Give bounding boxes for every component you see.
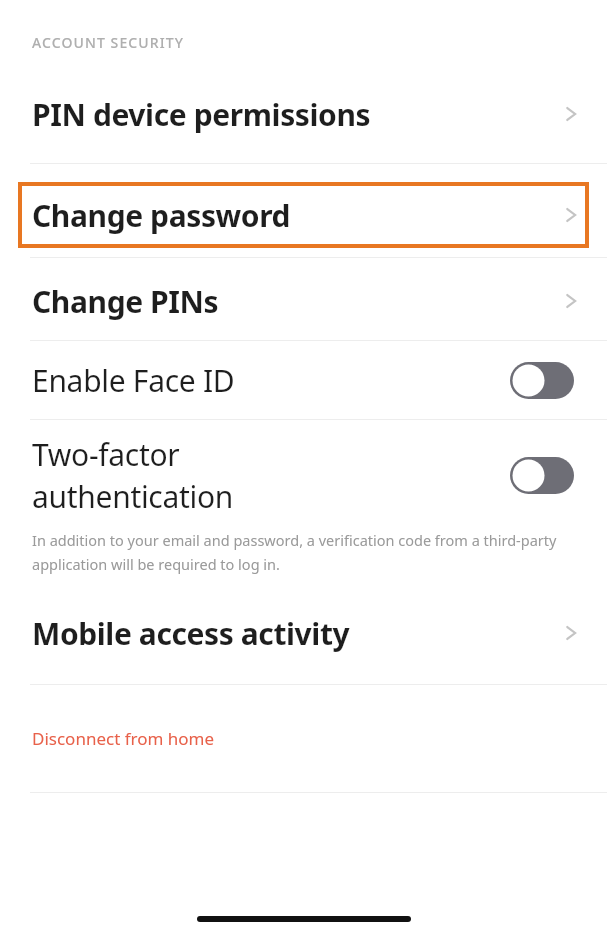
button[interactable]: Mobile access activity — [0, 602, 607, 664]
button[interactable]: Change password — [18, 182, 589, 248]
button[interactable]: Disconnect from home — [0, 685, 607, 792]
button[interactable]: Enable Face ID — [0, 341, 607, 419]
button[interactable]: Change PINs — [0, 270, 607, 332]
staticText: Mobile access activity — [32, 613, 559, 654]
staticText: Change password — [32, 195, 559, 236]
staticText: In addition to your email and password, … — [32, 530, 577, 574]
staticText: Disconnect from home — [32, 727, 215, 750]
button[interactable]: Two-factor authentication — [0, 420, 607, 530]
staticText: PIN device permissions — [32, 94, 559, 135]
staticText: Enable Face ID — [32, 360, 498, 401]
staticText: ACCOUNT SECURITY — [32, 33, 184, 52]
button[interactable]: Two-factor authentication — [510, 457, 574, 494]
button[interactable]: Enable Face ID — [510, 362, 574, 399]
staticText: Change PINs — [32, 281, 559, 322]
button[interactable]: PIN device permissions — [0, 83, 607, 145]
staticText: Two-factor authentication — [32, 434, 498, 517]
